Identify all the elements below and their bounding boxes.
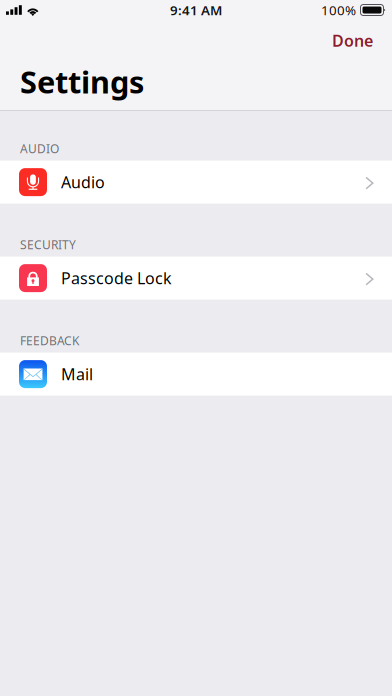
staticText: Audio bbox=[61, 171, 105, 193]
button[interactable]: Done bbox=[318, 23, 392, 58]
staticText: Settings bbox=[20, 61, 144, 102]
staticText: Done bbox=[332, 30, 373, 51]
button[interactable]: Audio bbox=[0, 161, 392, 204]
button[interactable]: Mail bbox=[0, 353, 392, 396]
staticText: Passcode Lock bbox=[61, 267, 172, 289]
staticText: AUDIO bbox=[20, 141, 59, 156]
staticText: Mail bbox=[61, 363, 93, 385]
staticText: FEEDBACK bbox=[20, 333, 79, 348]
staticText: 9:41 AM bbox=[170, 1, 222, 19]
staticText: 100% bbox=[321, 1, 356, 19]
button[interactable]: Passcode Lock bbox=[0, 257, 392, 300]
staticText: SECURITY bbox=[20, 237, 76, 252]
